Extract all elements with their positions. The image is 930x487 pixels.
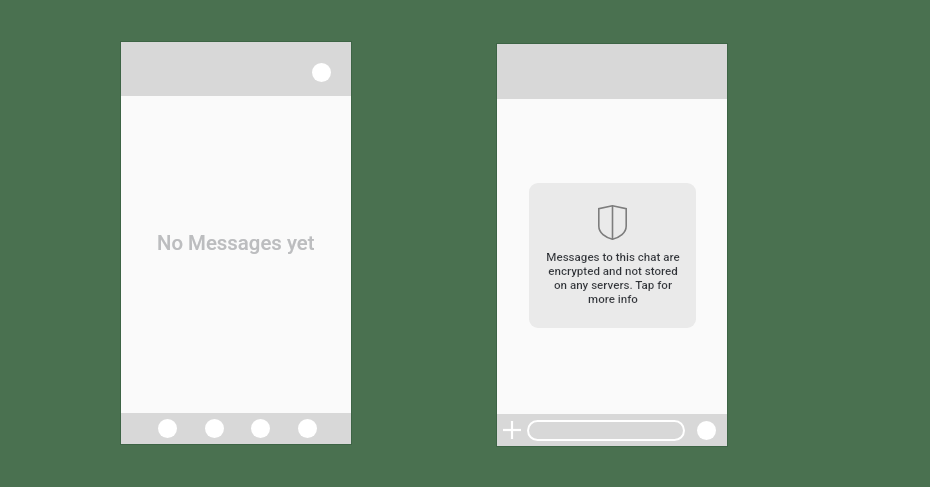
button[interactable]: Messages to this chat are encrypted and … — [529, 183, 696, 328]
button[interactable]: Tab 2 — [205, 419, 224, 438]
button[interactable]: Tab 3 — [251, 419, 270, 438]
button[interactable]: Add attachment — [502, 420, 522, 440]
staticText: No Messages yet — [157, 231, 315, 255]
staticText: Messages to this chat are encrypted and … — [546, 250, 680, 305]
button[interactable]: Send — [697, 421, 716, 440]
button[interactable]: Profile — [312, 63, 331, 82]
button[interactable]: Tab 4 — [298, 419, 317, 438]
button[interactable]: Tab 1 — [158, 419, 177, 438]
button[interactable] — [527, 420, 685, 441]
